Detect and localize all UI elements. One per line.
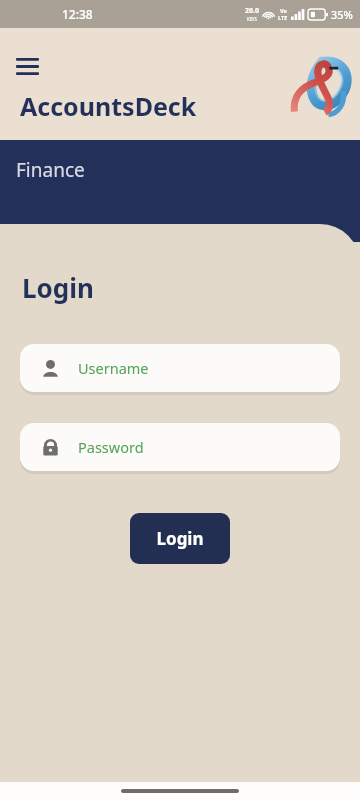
staticText: Login (156, 527, 204, 550)
staticText: 35% (331, 7, 353, 22)
staticText: 20.0 (245, 6, 259, 16)
button[interactable]: Open navigation menu (10, 49, 44, 83)
staticText: Finance (16, 157, 85, 183)
staticText: 12:38 (62, 6, 93, 22)
staticText: KB/S (247, 16, 257, 22)
staticText: Password (78, 437, 144, 457)
button[interactable]: Password (20, 423, 340, 471)
button[interactable]: Username (20, 344, 340, 392)
button[interactable]: AccountsDeck logo (290, 54, 352, 116)
staticText: LTE (278, 14, 288, 21)
staticText: Username (78, 358, 149, 378)
button[interactable]: Login (130, 513, 230, 564)
staticText: Login (22, 270, 94, 305)
staticText: Vo (280, 7, 287, 14)
staticText: AccountsDeck (20, 89, 197, 123)
